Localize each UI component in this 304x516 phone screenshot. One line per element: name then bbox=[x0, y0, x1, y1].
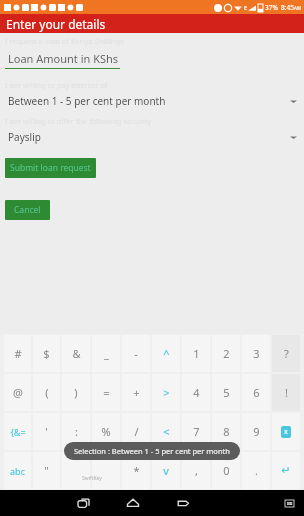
staticText: / bbox=[134, 424, 139, 439]
staticText: ^ bbox=[163, 346, 170, 361]
staticText: 0 bbox=[223, 463, 230, 478]
staticText: AM bbox=[294, 5, 301, 11]
staticText: = bbox=[103, 385, 110, 400]
staticText: Loan Amount in KShs bbox=[8, 51, 119, 66]
button[interactable]: v bbox=[152, 452, 180, 489]
staticText: ( bbox=[45, 385, 49, 400]
button[interactable]: - bbox=[122, 335, 150, 372]
staticText: - bbox=[134, 346, 138, 361]
staticText: _ bbox=[104, 346, 109, 361]
staticText: SwiftKey bbox=[82, 475, 102, 482]
staticText: 9 bbox=[253, 424, 260, 439]
other: Open interest dropdown bbox=[290, 98, 297, 105]
button[interactable]: abc bbox=[4, 452, 31, 489]
staticText: I am willing to pay interest of bbox=[5, 80, 108, 90]
button[interactable] bbox=[92, 452, 120, 489]
button[interactable]: " bbox=[33, 452, 60, 489]
button[interactable]: : bbox=[62, 413, 90, 450]
button[interactable]: ^ bbox=[152, 335, 180, 372]
button[interactable]: % bbox=[92, 413, 120, 450]
staticText: : bbox=[75, 424, 78, 439]
button[interactable]: x bbox=[272, 413, 300, 450]
staticText: " bbox=[44, 463, 49, 478]
button[interactable]: 9 bbox=[242, 413, 270, 450]
button[interactable]: > bbox=[152, 374, 180, 411]
button[interactable]: , bbox=[182, 452, 210, 489]
staticText: ) bbox=[74, 385, 78, 400]
staticText: ? bbox=[284, 346, 289, 361]
button[interactable]: Between 1 - 5 per cent per month bbox=[5, 94, 301, 108]
button[interactable]: & bbox=[62, 335, 90, 372]
staticText: & bbox=[72, 346, 81, 361]
button[interactable]: 8 bbox=[212, 413, 240, 450]
button[interactable]: ! bbox=[272, 374, 300, 411]
staticText: Payslip bbox=[8, 130, 290, 144]
staticText: {&= bbox=[10, 426, 26, 438]
staticText: # bbox=[14, 346, 22, 361]
staticText: + bbox=[133, 385, 140, 400]
staticText: $ bbox=[43, 346, 50, 361]
staticText: ↵ bbox=[281, 464, 291, 477]
staticText: I am willing to offer the following secu… bbox=[5, 116, 152, 126]
staticText: 7 bbox=[193, 424, 200, 439]
staticText: I request a loan of Kenya Shillings bbox=[5, 36, 124, 46]
button[interactable]: {&= bbox=[4, 413, 31, 450]
staticText: ' bbox=[45, 424, 48, 439]
button[interactable]: ? bbox=[272, 335, 300, 372]
staticText: Cancel bbox=[14, 204, 41, 216]
button[interactable]: ( bbox=[33, 374, 60, 411]
button[interactable]: 2 bbox=[212, 335, 240, 372]
button[interactable]: 5 bbox=[212, 374, 240, 411]
button[interactable]: Home bbox=[108, 490, 158, 516]
button[interactable]: = bbox=[92, 374, 120, 411]
staticText: < bbox=[163, 424, 170, 439]
button[interactable]: / bbox=[122, 413, 150, 450]
button[interactable]: 3 bbox=[242, 335, 270, 372]
staticText: , bbox=[195, 463, 198, 478]
staticText: % bbox=[101, 424, 111, 439]
button[interactable]: @ bbox=[4, 374, 31, 411]
button[interactable]: 0 bbox=[212, 452, 240, 489]
button[interactable]: Loan Amount in KShs bbox=[5, 51, 120, 69]
button[interactable] bbox=[62, 452, 90, 489]
button[interactable]: $ bbox=[33, 335, 60, 372]
staticText: Between 1 - 5 per cent per month bbox=[8, 94, 290, 108]
button[interactable]: . bbox=[242, 452, 270, 489]
staticText: ! bbox=[285, 385, 288, 400]
staticText: . bbox=[255, 463, 258, 478]
staticText: Submit loan request bbox=[10, 162, 91, 174]
staticText: 5 bbox=[223, 385, 230, 400]
button[interactable]: Back bbox=[158, 490, 208, 516]
button[interactable]: Submit loan request bbox=[5, 158, 96, 178]
button[interactable]: Recents bbox=[59, 490, 108, 516]
button[interactable]: + bbox=[122, 374, 150, 411]
staticText: Selection : Between 1 - 5 per cent per m… bbox=[74, 446, 230, 456]
button[interactable]: 1 bbox=[182, 335, 210, 372]
button[interactable]: 4 bbox=[182, 374, 210, 411]
staticText: > bbox=[163, 385, 170, 400]
button[interactable]: ) bbox=[62, 374, 90, 411]
staticText: 8 bbox=[223, 424, 230, 439]
button[interactable]: 6 bbox=[242, 374, 270, 411]
staticText: abc bbox=[10, 465, 25, 477]
other: Open security dropdown bbox=[290, 134, 297, 141]
staticText: * bbox=[133, 463, 140, 478]
staticText: v bbox=[163, 463, 169, 478]
button[interactable]: Switch keyboard bbox=[278, 490, 300, 516]
button[interactable]: # bbox=[4, 335, 31, 372]
button[interactable]: < bbox=[152, 413, 180, 450]
staticText: 8:45 bbox=[281, 3, 294, 12]
staticText: Enter your details bbox=[6, 16, 106, 32]
staticText: 37% bbox=[265, 3, 278, 12]
button[interactable]: Payslip bbox=[5, 130, 301, 144]
staticText: 3 bbox=[253, 346, 260, 361]
button[interactable]: ' bbox=[33, 413, 60, 450]
button[interactable]: _ bbox=[92, 335, 120, 372]
button[interactable]: 7 bbox=[182, 413, 210, 450]
staticText: x bbox=[284, 427, 288, 437]
button[interactable]: ↵ bbox=[272, 452, 300, 489]
staticText: 6 bbox=[253, 385, 260, 400]
button[interactable]: * bbox=[122, 452, 150, 489]
staticText: 1 bbox=[193, 346, 200, 361]
button[interactable]: Cancel bbox=[5, 200, 50, 220]
